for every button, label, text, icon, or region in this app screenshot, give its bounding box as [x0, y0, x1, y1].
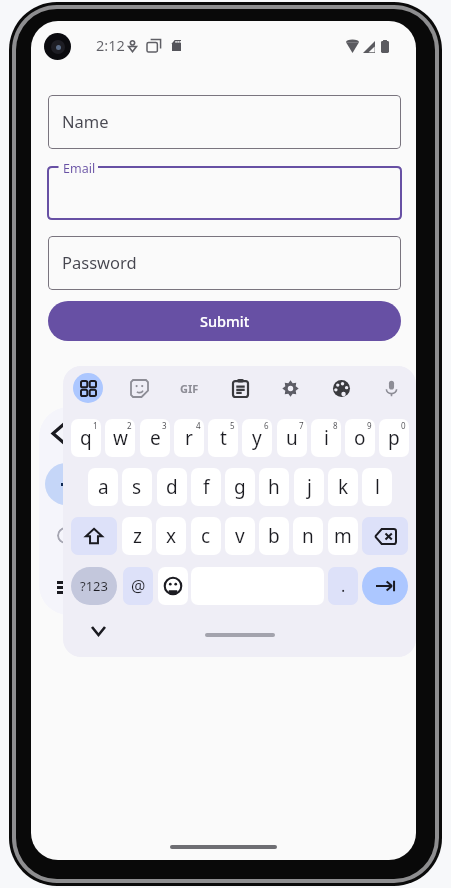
button[interactable]: v — [225, 517, 255, 555]
staticText: 4 — [196, 420, 201, 431]
button[interactable]: @ — [123, 567, 153, 605]
button[interactable]: Submit — [48, 301, 401, 341]
button[interactable]: l — [362, 468, 392, 506]
staticText: Name — [62, 110, 109, 132]
button[interactable]: GIF — [174, 373, 204, 403]
button[interactable]: d — [157, 468, 187, 506]
button[interactable]: n — [293, 517, 323, 555]
button[interactable]: g — [225, 468, 255, 506]
staticText: 6 — [264, 420, 269, 431]
staticText: l — [375, 474, 380, 500]
staticText: m — [334, 523, 352, 549]
staticText: s — [132, 474, 142, 500]
staticText: 1 — [93, 420, 98, 431]
button[interactable]: u — [277, 419, 307, 457]
button[interactable]: Clipboard — [225, 373, 255, 403]
button[interactable]: w — [105, 419, 135, 457]
staticText: b — [268, 523, 280, 549]
staticText: h — [268, 474, 280, 500]
staticText: i — [324, 425, 329, 451]
button[interactable]: e — [140, 419, 170, 457]
staticText: w — [113, 425, 128, 451]
button[interactable]: i — [311, 419, 341, 457]
button[interactable]: Themes — [326, 373, 356, 403]
staticText: o — [354, 425, 366, 451]
button[interactable]: Backspace — [362, 517, 408, 555]
button[interactable]: p — [379, 419, 409, 457]
staticText: e — [150, 425, 161, 451]
button[interactable]: r — [174, 419, 204, 457]
staticText: d — [166, 474, 178, 500]
button[interactable]: Emoji — [158, 567, 188, 605]
button[interactable]: o — [345, 419, 375, 457]
button[interactable]: f — [191, 468, 221, 506]
staticText: j — [307, 474, 312, 500]
staticText: c — [201, 523, 211, 549]
button[interactable]: a — [88, 468, 118, 506]
staticText: 5 — [230, 420, 235, 431]
button[interactable]: c — [191, 517, 221, 555]
button[interactable]: y — [242, 419, 272, 457]
staticText: 7 — [299, 420, 304, 431]
button[interactable]: Shift — [71, 517, 117, 555]
staticText: u — [286, 425, 298, 451]
button[interactable]: Stickers — [124, 373, 154, 403]
button[interactable]: . — [328, 567, 358, 605]
staticText: a — [98, 474, 109, 500]
staticText: ?123 — [80, 577, 108, 595]
button[interactable]: Email — [48, 159, 401, 219]
button[interactable]: Voice input — [376, 373, 406, 403]
staticText: n — [302, 523, 314, 549]
button[interactable]: Name — [48, 95, 401, 149]
staticText: 9 — [367, 420, 372, 431]
button[interactable]: k — [328, 468, 358, 506]
button[interactable]: z — [122, 517, 152, 555]
button[interactable]: s — [122, 468, 152, 506]
button[interactable]: m — [328, 517, 358, 555]
staticText: z — [133, 523, 142, 549]
button[interactable]: h — [259, 468, 289, 506]
staticText: @ — [131, 575, 146, 597]
button[interactable]: j — [294, 468, 324, 506]
staticText: t — [220, 425, 227, 451]
button[interactable]: b — [259, 517, 289, 555]
staticText: Email — [63, 160, 96, 177]
button[interactable]: Enter — [362, 567, 408, 605]
staticText: Submit — [200, 311, 250, 331]
button[interactable]: Settings — [275, 373, 305, 403]
button[interactable]: q — [71, 419, 101, 457]
staticText: p — [388, 425, 400, 451]
staticText: Password — [62, 251, 137, 273]
button[interactable]: t — [208, 419, 238, 457]
button[interactable] — [39, 407, 103, 615]
button[interactable]: x — [156, 517, 186, 555]
staticText: y — [252, 425, 262, 451]
staticText: 8 — [333, 420, 338, 431]
staticText: k — [338, 474, 349, 500]
staticText: q — [80, 425, 92, 451]
button[interactable]: Password — [48, 236, 401, 290]
staticText: GIF — [180, 381, 199, 396]
staticText: v — [235, 523, 245, 549]
button[interactable]: ?123 — [71, 567, 117, 605]
staticText: g — [234, 474, 246, 500]
staticText: x — [166, 523, 177, 549]
staticText: 2:12 — [96, 35, 125, 55]
staticText: f — [203, 474, 210, 500]
staticText: 3 — [162, 420, 167, 431]
staticText: 2 — [127, 420, 132, 431]
staticText: . — [341, 575, 346, 597]
staticText: r — [185, 425, 193, 451]
button[interactable]: Hide keyboard — [85, 618, 111, 644]
staticText: 0 — [401, 420, 406, 431]
button[interactable]: Keyboard modes — [73, 373, 103, 403]
